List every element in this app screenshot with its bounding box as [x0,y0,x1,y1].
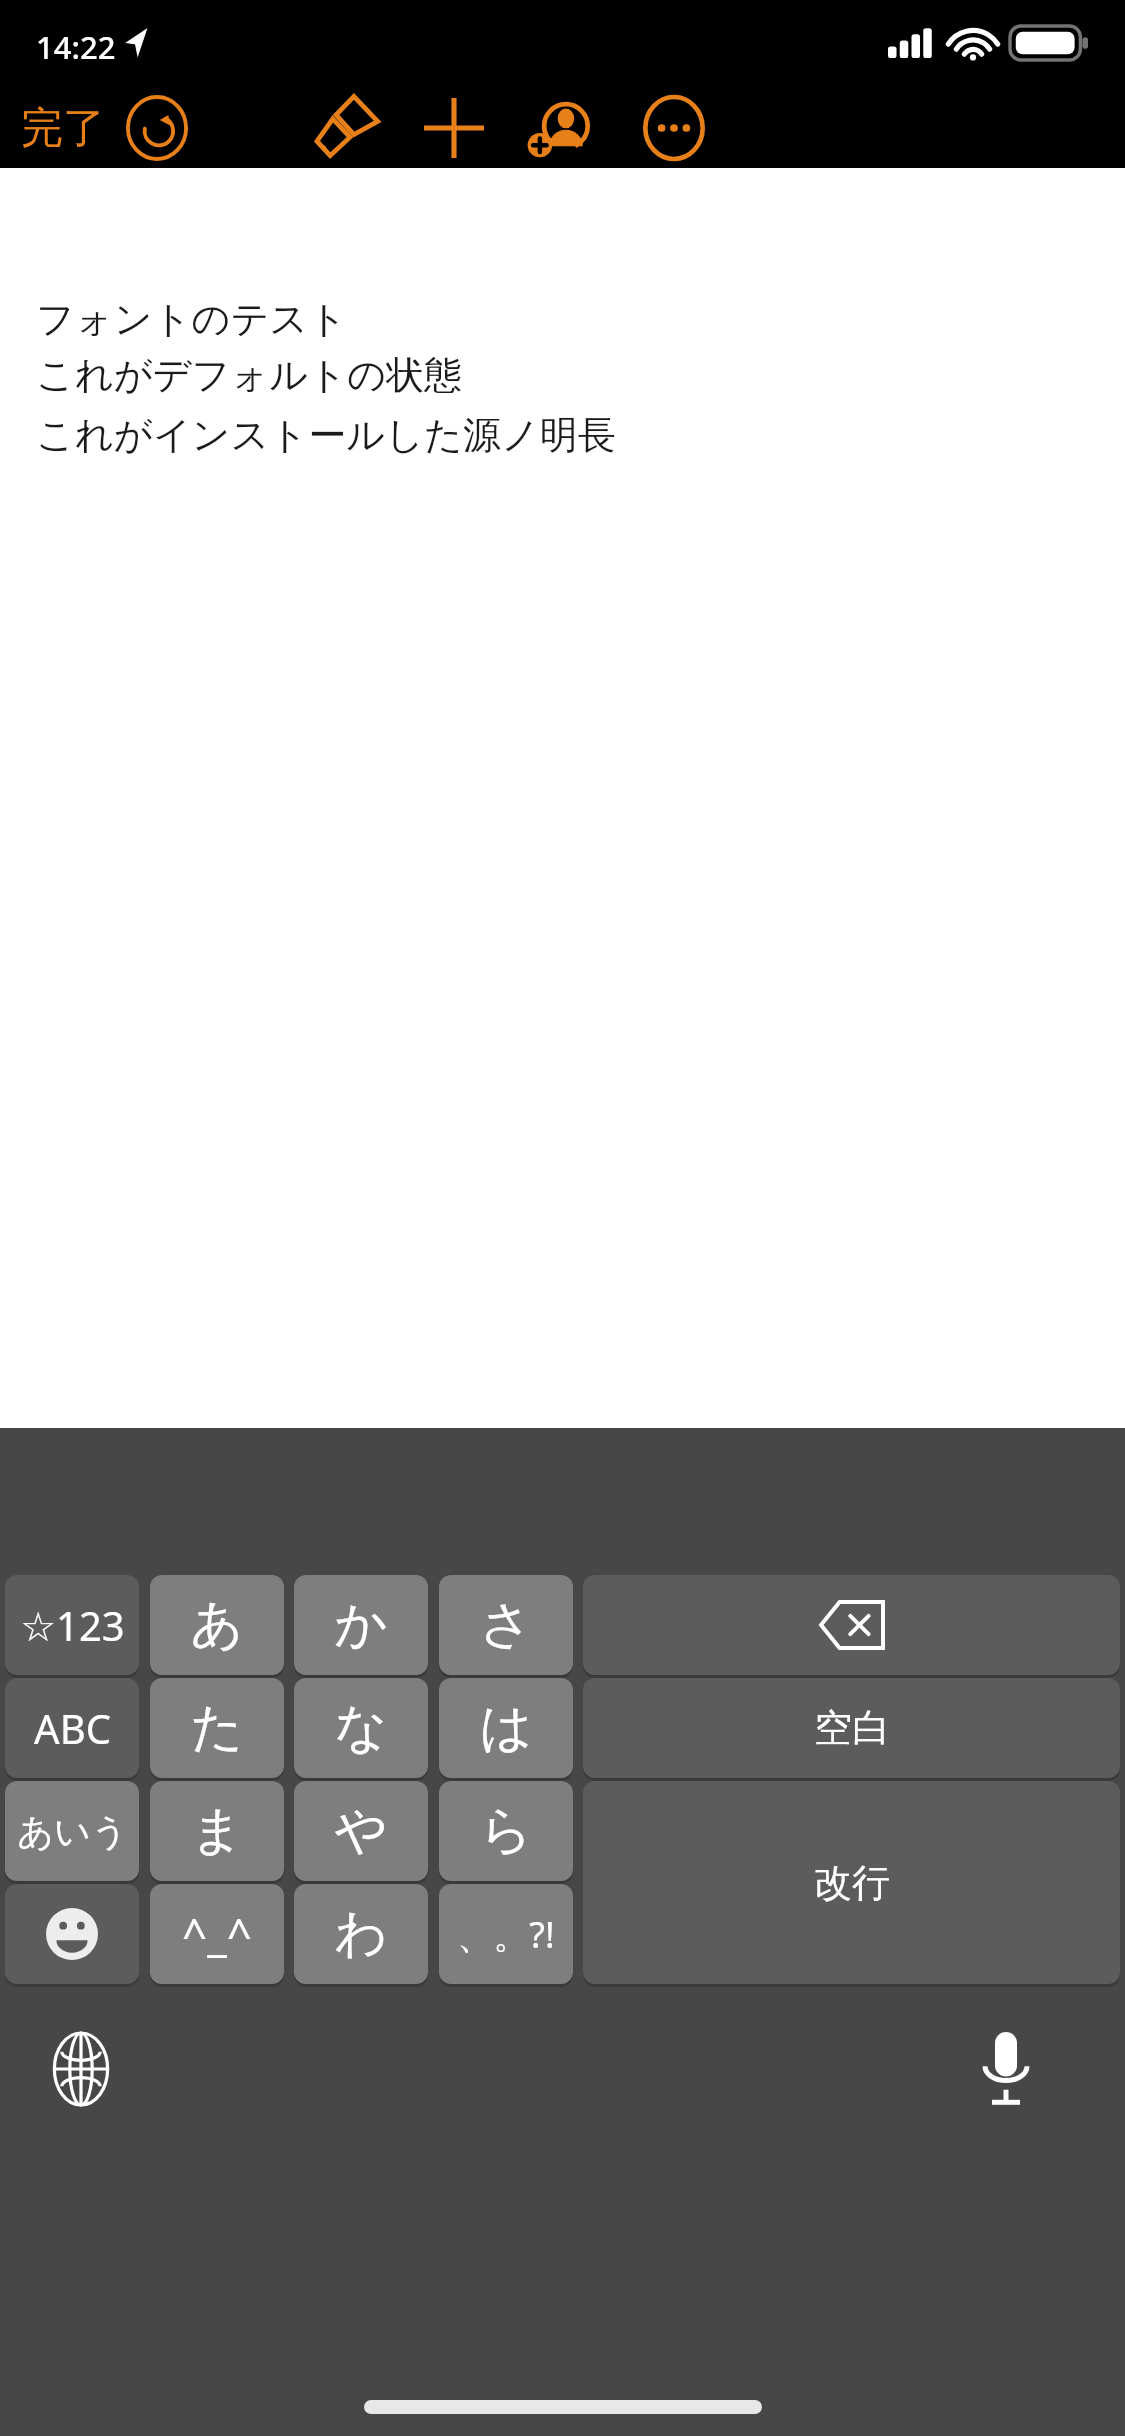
button[interactable]: わ [294,1884,428,1984]
button[interactable]: あいう [5,1781,139,1881]
staticText: あ [190,1592,244,1658]
staticText: これがデフォルトの状態 [36,351,463,399]
button[interactable]: 完了 [8,88,118,168]
button[interactable]: か [294,1575,428,1675]
button[interactable]: ら [439,1781,573,1881]
button[interactable]: Dictation [955,2018,1057,2120]
button[interactable]: 改行 [583,1781,1120,1984]
staticText: フォントのテスト [36,295,348,343]
button[interactable]: Add [408,88,500,168]
button[interactable]: フォントのテスト [0,168,1125,1428]
staticText: 空白 [814,1704,890,1752]
staticText: ら [479,1798,533,1864]
staticText: 完了 [21,102,105,155]
staticText: さ [479,1592,533,1658]
button[interactable]: More [628,88,720,168]
staticText: 、。?! [457,1910,555,1959]
staticText: は [479,1695,533,1761]
staticText: これがインストールした源ノ明長 [36,411,616,459]
button[interactable]: Emoji keyboard [5,1884,139,1984]
staticText: 改行 [814,1859,890,1907]
button[interactable]: 空白 [583,1678,1120,1778]
button[interactable]: さ [439,1575,573,1675]
staticText: か [334,1592,388,1658]
button[interactable]: ABC [5,1678,139,1778]
button[interactable]: Markup [300,88,392,168]
staticText: わ [334,1901,388,1967]
button[interactable]: ☆123 [5,1575,139,1675]
button[interactable]: Add people [512,88,604,168]
button[interactable]: あ [150,1575,284,1675]
button[interactable]: Next keyboard [30,2018,132,2120]
staticText: ま [190,1798,244,1864]
staticText: 14:22 [36,26,116,68]
button[interactable]: や [294,1781,428,1881]
button[interactable]: Delete [583,1575,1120,1675]
staticText: ABC [34,1701,111,1755]
staticText: な [334,1695,388,1761]
button[interactable]: た [150,1678,284,1778]
button[interactable]: ^_^ [150,1884,284,1984]
staticText: ^_^ [182,1904,252,1964]
button[interactable]: ま [150,1781,284,1881]
staticText: や [334,1798,388,1864]
button[interactable]: 、。?! [439,1884,573,1984]
button[interactable]: は [439,1678,573,1778]
button[interactable]: な [294,1678,428,1778]
button[interactable]: Undo [112,88,202,168]
staticText: た [190,1695,244,1761]
staticText: あいう [17,1809,128,1854]
staticText: ☆123 [20,1598,125,1652]
